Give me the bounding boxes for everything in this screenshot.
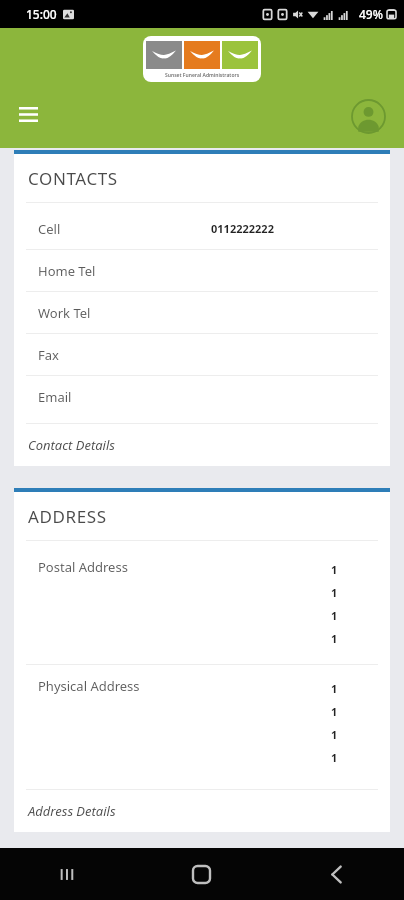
staticText: Postal Address xyxy=(38,558,331,576)
button[interactable]: Home Tel xyxy=(14,250,390,291)
button[interactable]: Home logo xyxy=(143,36,261,82)
staticText: 1 xyxy=(331,631,338,646)
staticText: Address Details xyxy=(28,802,116,820)
staticText: 1 xyxy=(331,750,338,765)
staticText: Email xyxy=(38,388,211,406)
staticText: Work Tel xyxy=(38,304,211,322)
button[interactable]: Cell xyxy=(14,208,390,249)
button[interactable]: Email xyxy=(14,376,390,417)
button[interactable]: Home xyxy=(134,848,269,900)
button[interactable]: Work Tel xyxy=(14,292,390,333)
staticText: 1 xyxy=(331,704,338,719)
staticText: Home Tel xyxy=(38,262,211,280)
staticText: Sunset Funeral Administrators xyxy=(165,72,240,79)
staticText: Fax xyxy=(38,346,211,364)
staticText: CONTACTS xyxy=(28,167,118,190)
staticText: Physical Address xyxy=(38,677,331,695)
staticText: 49% xyxy=(359,6,383,22)
button[interactable]: Postal Address xyxy=(14,546,390,664)
button[interactable]: Account xyxy=(346,94,390,138)
staticText: 1 xyxy=(331,562,338,577)
staticText: Cell xyxy=(38,220,211,238)
staticText: 15:00 xyxy=(26,6,57,22)
button[interactable]: Menu xyxy=(8,94,48,134)
button[interactable]: Physical Address xyxy=(14,665,390,783)
staticText: 1 xyxy=(331,608,338,623)
button[interactable]: Recents xyxy=(0,848,134,900)
staticText: 1 xyxy=(331,585,338,600)
staticText: ADDRESS xyxy=(28,505,107,528)
button[interactable]: Back xyxy=(269,848,404,900)
button[interactable]: Fax xyxy=(14,334,390,375)
staticText: 0112222222 xyxy=(211,221,274,236)
staticText: Contact Details xyxy=(28,436,115,454)
staticText: 1 xyxy=(331,681,338,696)
staticText: 1 xyxy=(331,727,338,742)
